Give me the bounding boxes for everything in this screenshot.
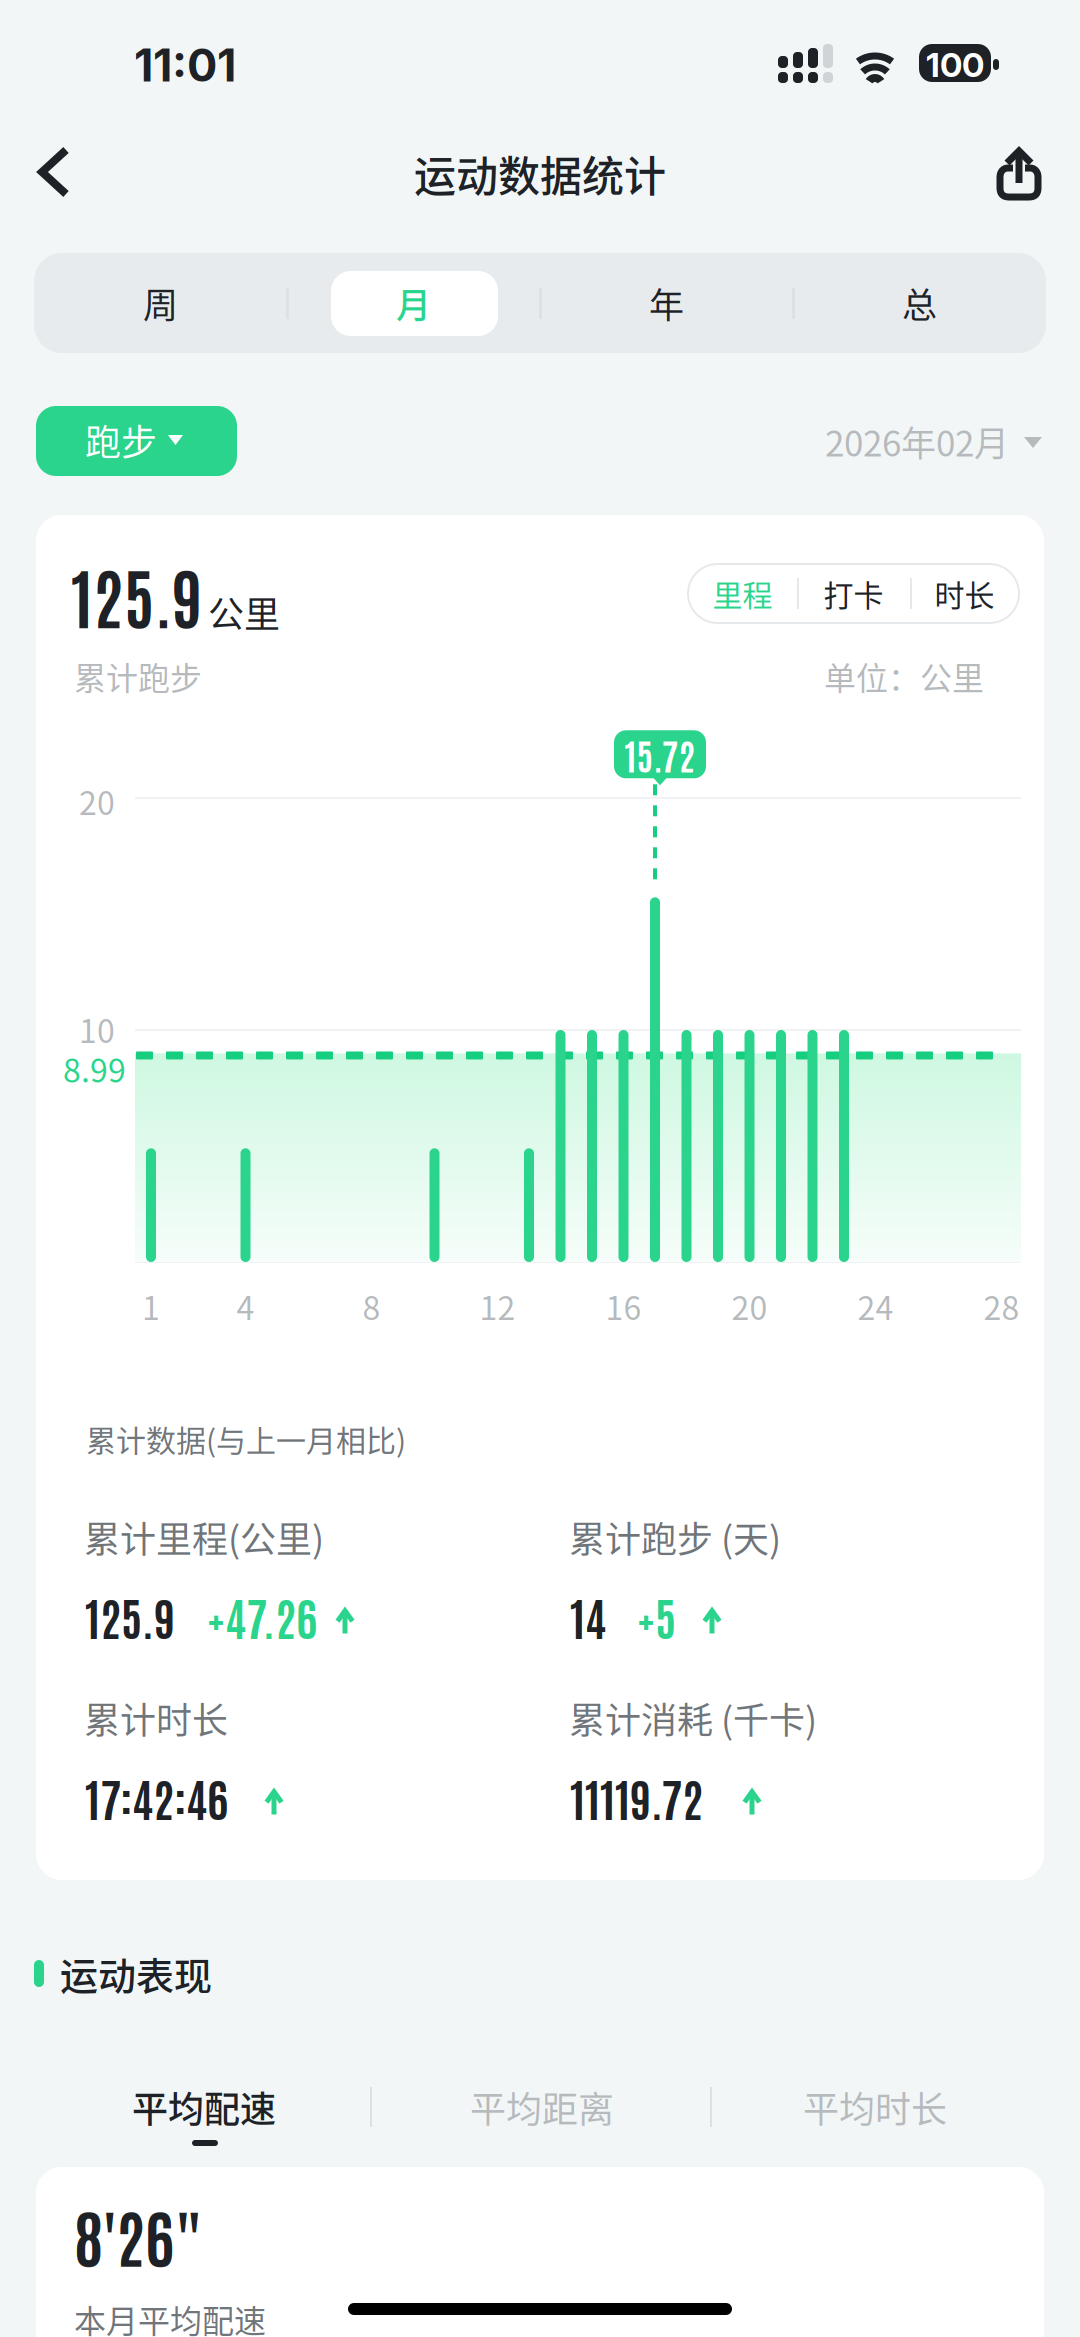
staticText: 125.9 — [71, 552, 203, 637]
staticText: 月 — [396, 278, 431, 328]
button[interactable]: 时长 — [910, 564, 1019, 623]
staticText: 单位：公里 — [824, 653, 984, 699]
staticText: 4 — [236, 1283, 254, 1329]
button[interactable]: 里程 — [688, 564, 797, 623]
staticText: 125.9 — [85, 1586, 175, 1645]
staticText: 跑步 — [85, 414, 157, 466]
button[interactable]: 2026年02月 — [827, 406, 1042, 476]
staticText: 10 — [79, 1006, 115, 1052]
staticText: 累计跑步 — [74, 653, 202, 699]
staticText: 里程 — [712, 572, 772, 615]
staticText: 平均配速 — [132, 2081, 276, 2133]
staticText: 17:42:46 — [85, 1767, 228, 1826]
staticText: 12 — [479, 1283, 515, 1329]
staticText: 14 — [570, 1586, 606, 1645]
staticText: 平均时长 — [803, 2081, 947, 2133]
staticText: 累计时长 — [84, 1692, 228, 1744]
staticText: 100 — [926, 44, 984, 85]
staticText: 时长 — [934, 572, 994, 615]
staticText: 累计消耗 (千卡) — [569, 1692, 817, 1744]
staticText: 运动数据统计 — [414, 143, 666, 204]
staticText: 1 — [142, 1283, 160, 1329]
staticText: 15.72 — [624, 731, 695, 778]
button[interactable]: 周 — [34, 253, 287, 353]
staticText: +47.26 — [207, 1586, 317, 1645]
button[interactable]: 跑步 — [36, 406, 237, 476]
staticText: 2026年02月 — [825, 416, 1009, 467]
button[interactable]: 总 — [793, 253, 1046, 353]
staticText: 周 — [143, 278, 178, 328]
staticText: 年 — [649, 278, 684, 328]
button[interactable]: 年 — [540, 253, 793, 353]
staticText: 总 — [902, 278, 937, 328]
staticText: 累计数据(与上一月相比) — [86, 1417, 406, 1460]
staticText: 11:01 — [134, 38, 236, 92]
staticText: 20 — [79, 778, 115, 824]
staticText: 16 — [605, 1283, 641, 1329]
button[interactable]: Back — [0, 110, 120, 230]
staticText: 11119.72 — [570, 1767, 703, 1826]
button[interactable]: 月 — [287, 253, 540, 353]
button[interactable]: Share — [965, 110, 1075, 230]
staticText: 24 — [857, 1283, 893, 1329]
staticText: 8.99 — [63, 1045, 126, 1092]
staticText: 平均距离 — [470, 2081, 614, 2133]
staticText: 累计里程(公里) — [84, 1511, 324, 1563]
staticText: 公里 — [208, 586, 280, 638]
button[interactable]: 平均时长 — [735, 2076, 1015, 2138]
staticText: +5 — [637, 1586, 676, 1645]
staticText: 本月平均配速 — [74, 2296, 266, 2337]
staticText: 28 — [983, 1283, 1019, 1329]
button[interactable]: 平均距离 — [402, 2076, 682, 2138]
button[interactable]: 打卡 — [797, 564, 910, 623]
staticText: 累计跑步 (天) — [569, 1511, 781, 1563]
staticText: 8'26" — [74, 2194, 203, 2275]
staticText: 8 — [362, 1283, 380, 1329]
staticText: 打卡 — [823, 572, 883, 615]
staticText: 20 — [731, 1283, 767, 1329]
staticText: 运动表现 — [60, 1946, 212, 2001]
button[interactable]: 平均配速 — [64, 2076, 344, 2138]
